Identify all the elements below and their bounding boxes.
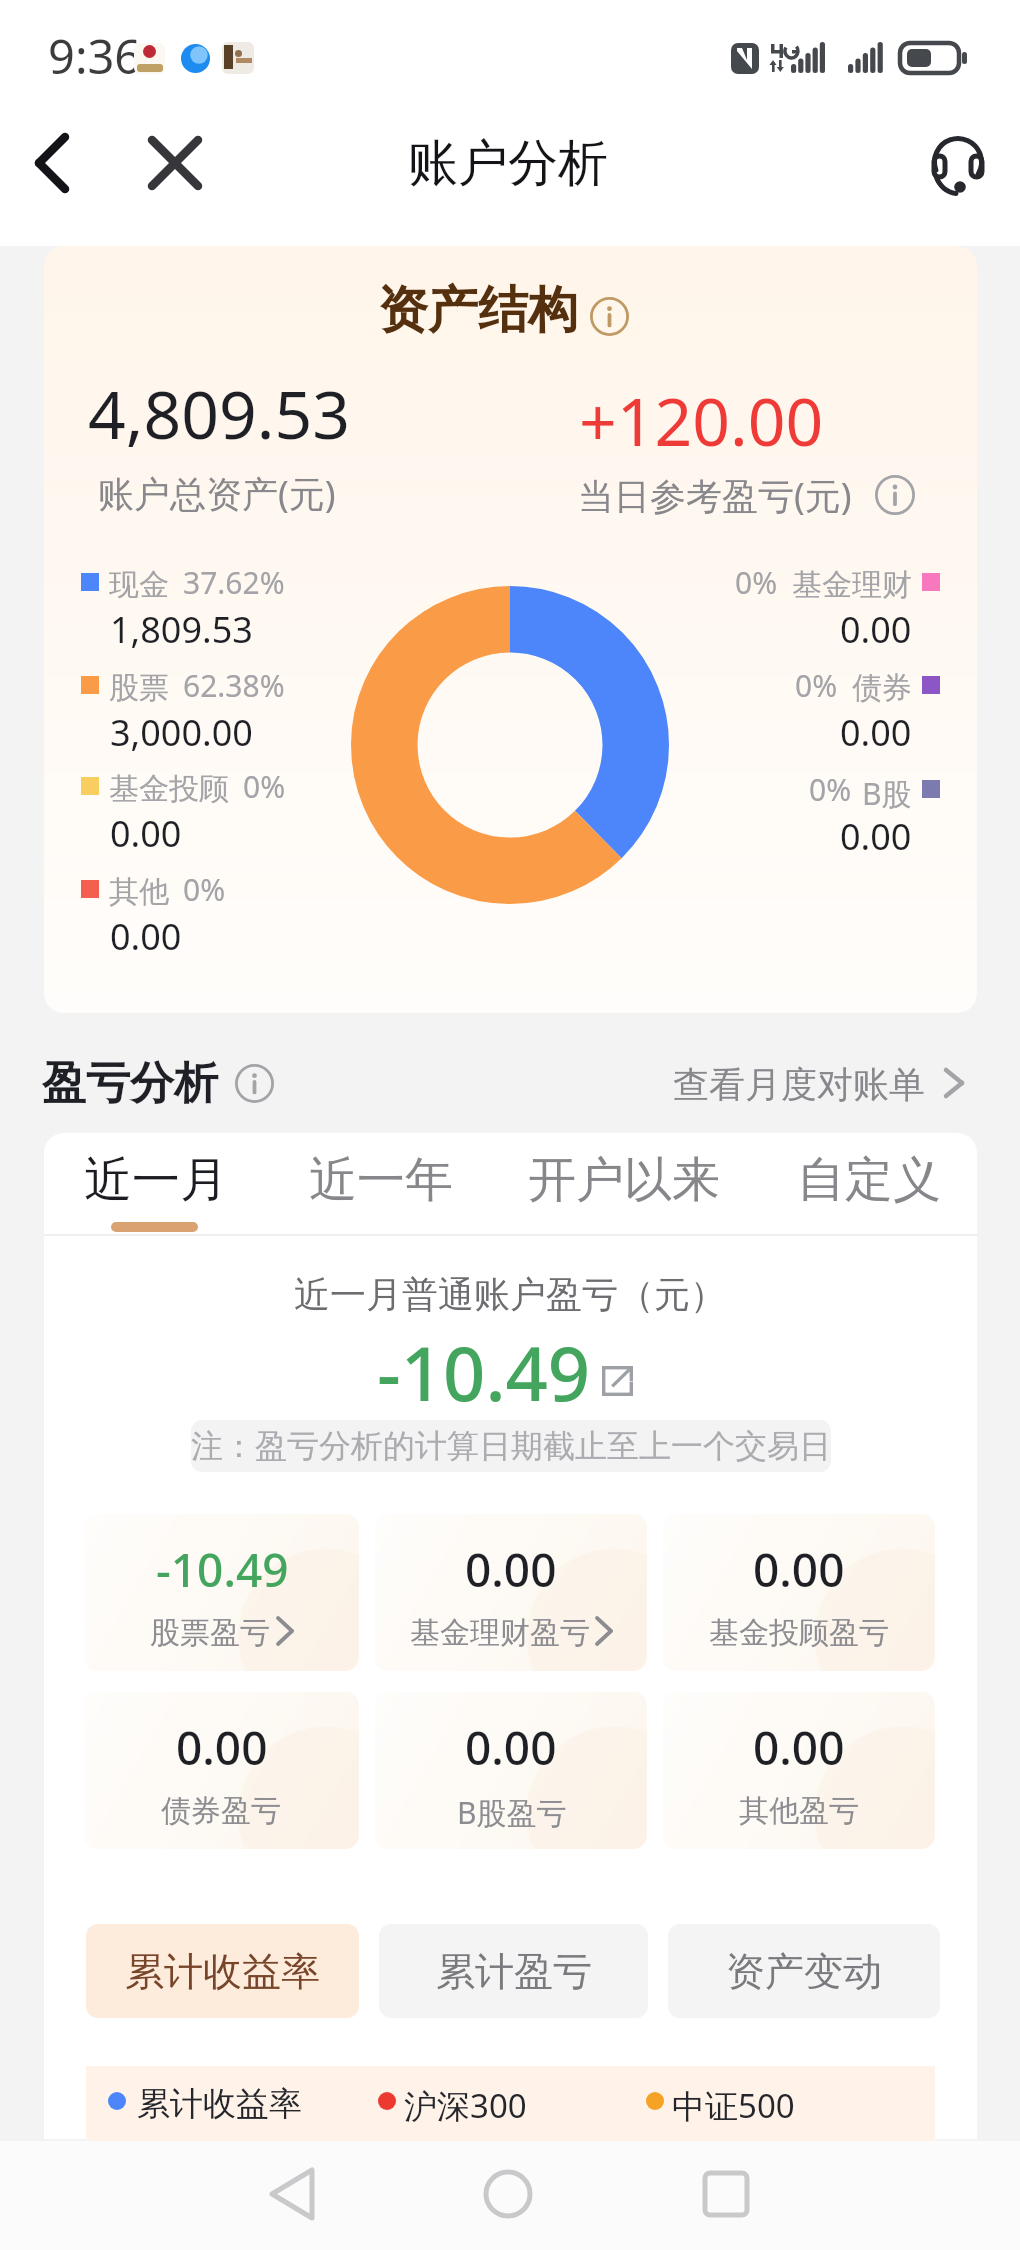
staticText: B股盈亏 xyxy=(457,1792,567,1833)
staticText: 3,000.00 xyxy=(110,708,253,757)
staticText: 9:36 xyxy=(48,24,142,88)
button[interactable]: Back xyxy=(14,125,90,201)
staticText: +120.00 xyxy=(579,375,824,465)
button[interactable]: Home xyxy=(468,2154,548,2234)
staticText: 0% xyxy=(795,665,838,706)
button[interactable] xyxy=(660,1050,980,1114)
staticText: 0.00 xyxy=(753,1538,845,1601)
staticText: 基金理财 xyxy=(792,566,912,604)
staticText: 0.00 xyxy=(840,605,912,654)
staticText: 账户总资产(元) xyxy=(98,469,336,518)
staticText: B股 xyxy=(862,773,912,814)
staticText: 0.00 xyxy=(840,812,912,861)
staticText: 股票盈亏 xyxy=(150,1614,270,1652)
staticText: -10.49 xyxy=(377,1322,591,1423)
staticText: 累计盈亏 xyxy=(436,1947,592,1996)
staticText: 62.38% xyxy=(183,665,285,706)
button[interactable] xyxy=(375,1692,647,1849)
staticText: 0% xyxy=(183,869,226,910)
staticText: 37.62% xyxy=(183,562,285,603)
staticText: 0% xyxy=(735,562,778,603)
staticText: 沪深300 xyxy=(404,2083,527,2128)
staticText: 中证500 xyxy=(672,2083,795,2128)
staticText: 开户以来 xyxy=(528,1150,720,1210)
staticText: 近一月普通账户盈亏（元） xyxy=(294,1272,726,1317)
staticText: 基金投顾盈亏 xyxy=(709,1614,889,1652)
staticText: 0% xyxy=(243,766,286,807)
staticText: 近一月 xyxy=(84,1150,228,1210)
button[interactable] xyxy=(663,1514,935,1671)
staticText: 债券 xyxy=(852,669,912,707)
staticText: 自定义 xyxy=(797,1150,941,1210)
staticText: 近一年 xyxy=(309,1150,453,1210)
staticText: 基金投顾 xyxy=(109,770,229,808)
staticText: 账户分析 xyxy=(408,132,608,195)
staticText: 资产结构 xyxy=(378,279,578,342)
staticText: 0.00 xyxy=(110,912,182,961)
staticText: 累计收益率 xyxy=(125,1947,320,1996)
staticText: 4,809.53 xyxy=(88,368,350,458)
staticText: 注：盈亏分析的计算日期截止至上一个交易日 xyxy=(191,1426,831,1466)
button[interactable]: Customer service xyxy=(921,126,995,200)
staticText: 0.00 xyxy=(110,809,182,858)
staticText: 0.00 xyxy=(176,1716,268,1779)
button[interactable]: 资产变动 xyxy=(668,1924,940,2018)
staticText: 0.00 xyxy=(840,708,912,757)
staticText: 基金理财盈亏 xyxy=(410,1614,590,1652)
staticText: 0.00 xyxy=(753,1716,845,1779)
button[interactable] xyxy=(84,1692,359,1849)
staticText: -10.49 xyxy=(156,1538,289,1601)
staticText: 其他盈亏 xyxy=(739,1792,859,1830)
staticText: 债券盈亏 xyxy=(161,1792,281,1830)
staticText: 0.00 xyxy=(465,1538,557,1601)
staticText: 现金 xyxy=(109,566,169,604)
button[interactable] xyxy=(663,1692,935,1849)
staticText: 累计收益率 xyxy=(137,2083,302,2125)
staticText: 股票 xyxy=(109,669,169,707)
button[interactable] xyxy=(84,1514,359,1671)
staticText: 0% xyxy=(809,769,852,810)
button[interactable] xyxy=(759,1133,979,1234)
staticText: 资产变动 xyxy=(726,1947,882,1996)
button[interactable] xyxy=(375,1514,647,1671)
button[interactable]: Recents xyxy=(686,2154,766,2234)
staticText: 1,809.53 xyxy=(110,605,253,654)
button[interactable]: 累计盈亏 xyxy=(379,1924,648,2018)
button[interactable]: Close xyxy=(137,125,213,201)
button[interactable]: Back xyxy=(253,2154,333,2234)
staticText: 当日参考盈亏(元) xyxy=(578,471,852,520)
button[interactable] xyxy=(271,1133,491,1234)
staticText: 0.00 xyxy=(465,1716,557,1779)
staticText: 盈亏分析 xyxy=(42,1056,218,1111)
button[interactable] xyxy=(46,1133,266,1234)
staticText: 其他 xyxy=(109,873,169,911)
staticText: 查看月度对账单 xyxy=(673,1062,925,1107)
button[interactable] xyxy=(514,1133,734,1234)
button[interactable]: 累计收益率 xyxy=(86,1924,359,2018)
